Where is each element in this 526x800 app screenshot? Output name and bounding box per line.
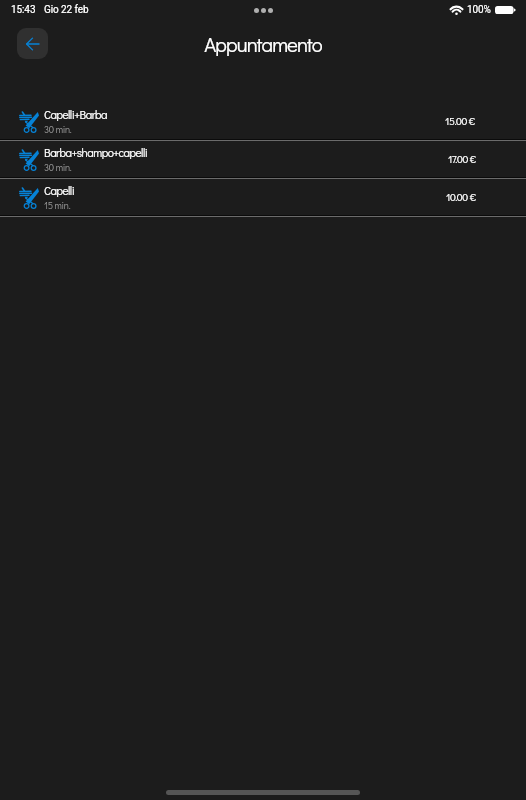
staticText: Appuntamento — [204, 30, 322, 57]
staticText: Barba+shampo+capelli — [44, 145, 148, 160]
staticText: 100% — [467, 4, 491, 16]
staticText: 15.00 € — [445, 114, 476, 128]
staticText: 30 min. — [44, 123, 72, 135]
staticText: 15 min. — [44, 199, 71, 211]
staticText: Capelli+Barba — [44, 107, 108, 122]
button[interactable]: Capelli+Barba — [0, 103, 526, 139]
button[interactable]: Back — [17, 28, 48, 59]
staticText: 30 min. — [44, 161, 72, 173]
staticText: 17.00 € — [448, 152, 476, 166]
staticText: Capelli — [44, 183, 75, 198]
button[interactable]: Barba+shampo+capelli — [0, 141, 526, 177]
staticText: Gio 22 feb — [44, 4, 89, 16]
button[interactable]: Capelli — [0, 179, 526, 215]
staticText: 10.00 € — [446, 190, 476, 204]
staticText: 15:43 — [11, 4, 36, 16]
